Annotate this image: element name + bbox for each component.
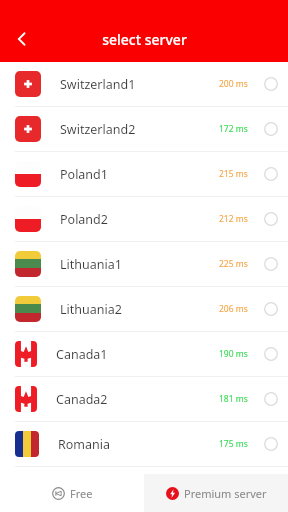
staticText: Poland2: [60, 211, 219, 228]
button[interactable]: Romania: [0, 422, 288, 467]
staticText: Lithuania2: [60, 301, 219, 318]
staticText: 215 ms: [219, 168, 248, 180]
staticText: 181 ms: [219, 393, 248, 405]
staticText: 206 ms: [219, 303, 248, 315]
staticText: Canada2: [56, 391, 219, 408]
button[interactable]: Canada2: [0, 377, 288, 422]
staticText: Lithuania1: [60, 256, 219, 273]
staticText: 212 ms: [219, 213, 248, 225]
button[interactable]: Free: [0, 474, 144, 512]
staticText: Canada1: [56, 346, 219, 363]
button[interactable]: Switzerland1: [0, 62, 288, 107]
staticText: 190 ms: [219, 348, 248, 360]
button[interactable]: Poland1: [0, 152, 288, 197]
staticText: Free: [70, 486, 93, 501]
button[interactable]: Canada1: [0, 332, 288, 377]
button[interactable]: Premium server: [144, 474, 288, 512]
button[interactable]: Back: [4, 21, 40, 57]
button[interactable]: Lithuania1: [0, 242, 288, 287]
button[interactable]: Lithuania2: [0, 287, 288, 332]
button[interactable]: Switzerland2: [0, 107, 288, 152]
staticText: 175 ms: [219, 438, 248, 450]
staticText: 172 ms: [219, 123, 248, 135]
staticText: select server: [102, 30, 187, 49]
staticText: Romania: [58, 436, 219, 453]
staticText: Premium server: [184, 486, 267, 501]
button[interactable]: Poland2: [0, 197, 288, 242]
staticText: 200 ms: [219, 78, 248, 90]
staticText: Switzerland1: [60, 76, 219, 93]
staticText: 225 ms: [219, 258, 248, 270]
staticText: Poland1: [60, 166, 219, 183]
staticText: Switzerland2: [60, 121, 219, 138]
